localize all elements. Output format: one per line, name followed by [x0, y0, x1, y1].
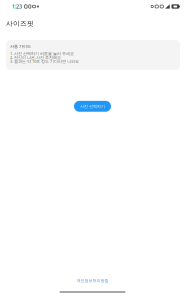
staticText: 사진 선택하기 — [80, 104, 105, 109]
staticText: 개인정보처리방침 — [76, 278, 108, 283]
staticText: 1:23 — [12, 3, 22, 10]
staticText: 1. 사진 선택하기 버튼을 눌러 주세요 2. 전신이 나온 사진 추천해요 … — [10, 51, 79, 64]
staticText: 사이즈핏 — [6, 19, 34, 28]
button[interactable]: 사진 선택하기 — [74, 101, 111, 112]
staticText: 사용 가이드 — [10, 44, 31, 49]
button[interactable]: 개인정보처리방침 — [76, 278, 108, 283]
